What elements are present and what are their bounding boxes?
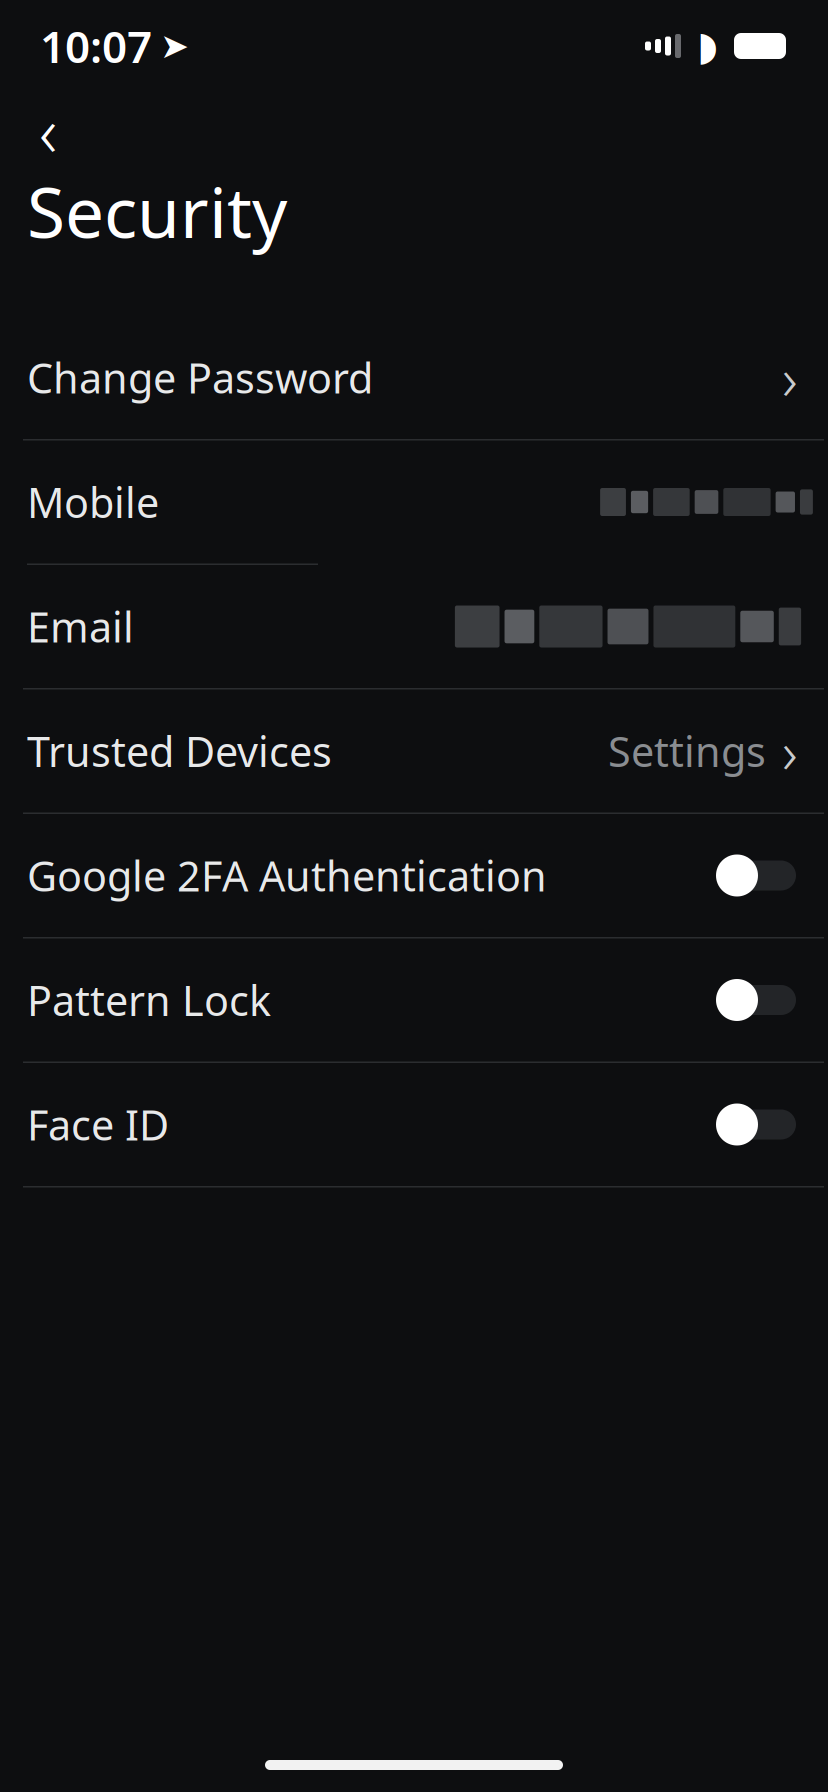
- button[interactable]: Back: [18, 100, 78, 160]
- staticText: 10:07: [40, 17, 152, 75]
- staticText: ➤: [160, 26, 189, 66]
- staticText: Mobile: [27, 475, 159, 529]
- staticText: ◗: [697, 23, 718, 69]
- button[interactable]: Pattern Lock: [0, 938, 828, 1061]
- staticText: Face ID: [27, 1097, 169, 1152]
- staticText: Trusted Devices: [27, 724, 332, 778]
- staticText: Security: [27, 165, 287, 257]
- staticText: Change Password: [27, 350, 373, 405]
- button[interactable]: Google 2FA Authentication: [0, 814, 828, 937]
- staticText: Pattern Lock: [27, 973, 271, 1027]
- staticText: ‹: [39, 84, 57, 176]
- button[interactable]: Change Password: [0, 316, 828, 439]
- staticText: ›: [782, 712, 798, 790]
- staticText: Email: [27, 599, 134, 654]
- staticText: ›: [782, 338, 798, 416]
- staticText: Settings: [608, 724, 766, 778]
- button[interactable]: Trusted Devices: [0, 689, 828, 812]
- button[interactable]: Face ID: [0, 1063, 828, 1186]
- button[interactable]: Mobile: [0, 440, 828, 563]
- button[interactable]: Email: [0, 565, 828, 688]
- staticText: Google 2FA Authentication: [27, 848, 547, 903]
